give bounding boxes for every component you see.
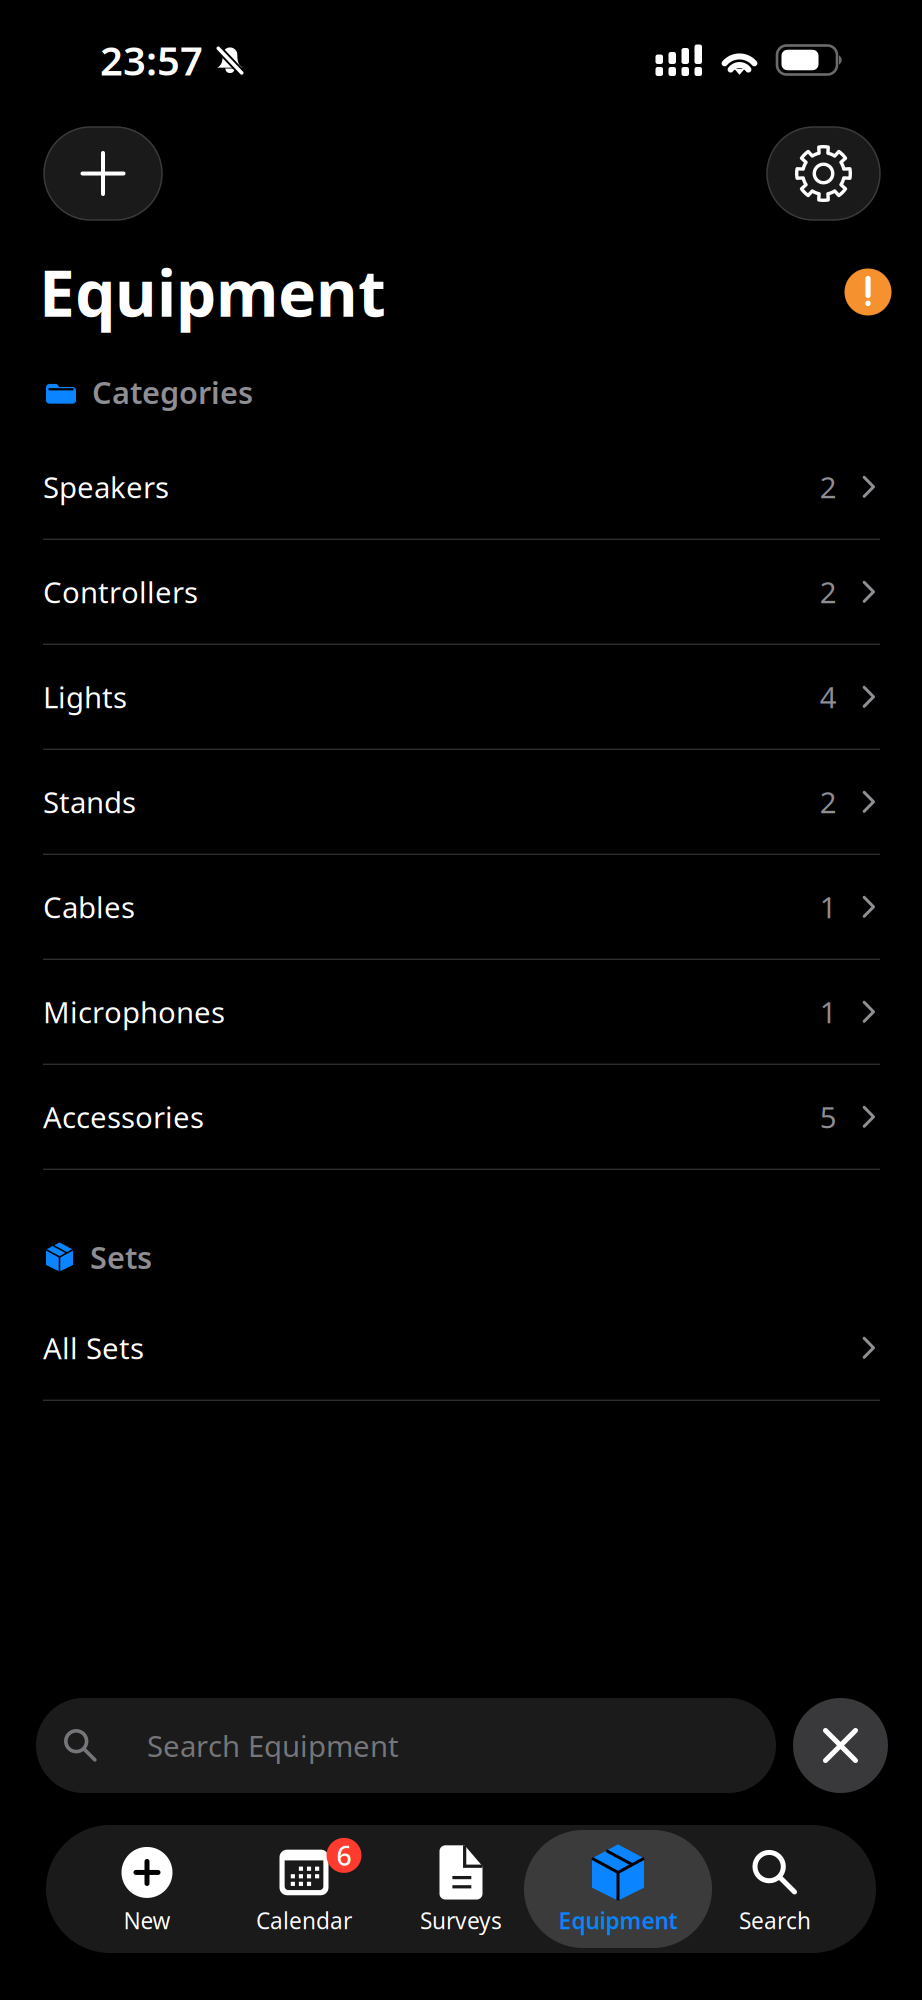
button[interactable]: Search Equipment	[36, 1698, 776, 1793]
button[interactable]: 6	[225, 1830, 382, 1948]
staticText: 2	[820, 782, 837, 821]
button[interactable]: Warnings	[842, 266, 894, 318]
button[interactable]: Settings	[767, 127, 880, 220]
staticText: 23:57	[100, 33, 203, 86]
button[interactable]: Stands	[0, 750, 922, 855]
button[interactable]: Clear search	[793, 1698, 888, 1793]
button[interactable]: Search	[696, 1830, 853, 1948]
button[interactable]: Microphones	[0, 960, 922, 1065]
staticText: 1	[820, 887, 837, 926]
button[interactable]: Lights	[0, 645, 922, 750]
staticText: Cables	[43, 887, 135, 926]
staticText: Controllers	[43, 572, 198, 611]
staticText: 5	[820, 1097, 837, 1136]
staticText: Accessories	[43, 1097, 204, 1136]
button[interactable]: Equipment	[524, 1830, 712, 1948]
button[interactable]: Surveys	[382, 1830, 539, 1948]
staticText: Surveys	[420, 1905, 502, 1935]
staticText: Categories	[92, 372, 253, 412]
staticText: Stands	[43, 782, 136, 821]
button[interactable]: Add	[44, 127, 162, 220]
staticText: All Sets	[43, 1328, 144, 1367]
button[interactable]: New	[68, 1830, 225, 1948]
staticText: Equipment	[558, 1905, 677, 1935]
button[interactable]: Speakers	[0, 435, 922, 540]
staticText: 6	[336, 1838, 351, 1873]
button[interactable]: All Sets	[0, 1296, 922, 1401]
staticText: 1	[820, 992, 837, 1031]
staticText: Sets	[90, 1237, 152, 1277]
staticText: Search	[739, 1905, 811, 1935]
button[interactable]: Controllers	[0, 540, 922, 645]
staticText: Speakers	[43, 467, 169, 506]
staticText: Equipment	[39, 249, 386, 334]
staticText: Search Equipment	[147, 1726, 399, 1765]
staticText: Lights	[43, 677, 127, 716]
button[interactable]: Accessories	[0, 1065, 922, 1170]
staticText: New	[123, 1905, 170, 1935]
staticText: 2	[820, 467, 837, 506]
staticText: 4	[820, 677, 837, 716]
staticText: Calendar	[256, 1905, 352, 1935]
staticText: Microphones	[43, 992, 225, 1031]
staticText: 2	[820, 572, 837, 611]
button[interactable]: Cables	[0, 855, 922, 960]
